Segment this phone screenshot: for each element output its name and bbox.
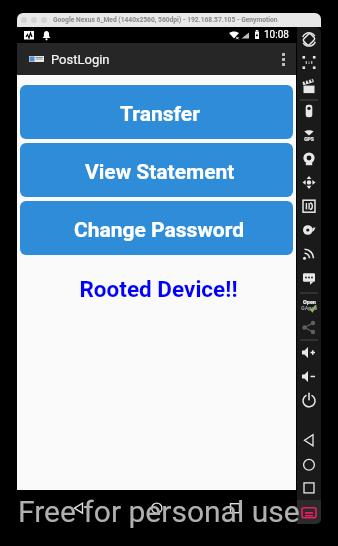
- button[interactable]: Transfer: [20, 85, 293, 139]
- staticText: GPS: [297, 136, 321, 142]
- button[interactable]: More options: [282, 53, 285, 66]
- button[interactable]: View Statement: [20, 143, 293, 197]
- button[interactable]: Change Password: [20, 201, 293, 255]
- staticText: View Statement: [85, 160, 235, 185]
- staticText: Open: [303, 299, 316, 305]
- staticText: PostLogin: [51, 52, 110, 67]
- staticText: Change Password: [74, 218, 245, 243]
- staticText: Free for personal use: [18, 494, 300, 529]
- staticText: Google Nexus 6_Med (1440x2560, 560dpi) -…: [53, 16, 278, 24]
- staticText: GApps: [301, 305, 318, 311]
- staticText: 10:08: [264, 29, 289, 41]
- staticText: Transfer: [120, 102, 200, 127]
- staticText: Rooted Device!!: [22, 276, 295, 302]
